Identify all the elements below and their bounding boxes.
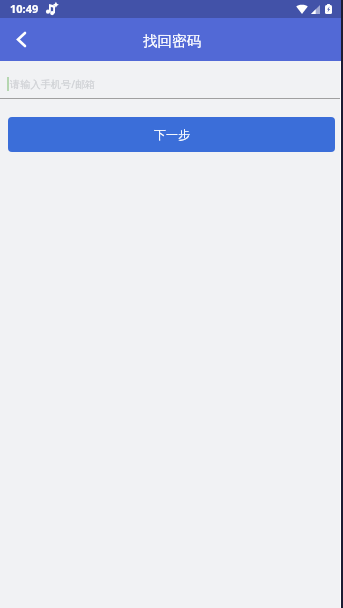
staticText: 下一步 <box>154 127 190 142</box>
button[interactable]: 下一步 <box>8 117 335 152</box>
button[interactable]: 请输入手机号/邮箱 <box>0 71 343 97</box>
button[interactable]: Back <box>0 18 44 61</box>
staticText: 找回密码 <box>143 32 201 50</box>
staticText: 请输入手机号/邮箱 <box>10 77 96 91</box>
staticText: 10:49 <box>10 1 39 16</box>
